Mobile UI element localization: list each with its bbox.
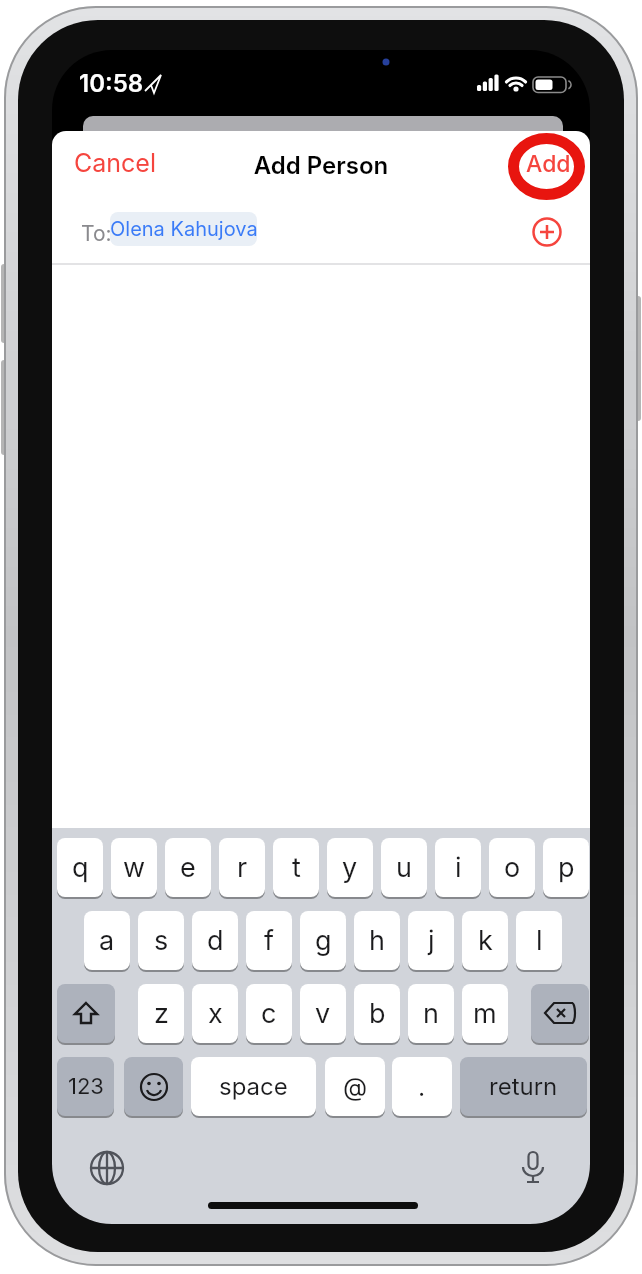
staticText: j bbox=[428, 924, 435, 957]
button[interactable]: . bbox=[392, 1057, 452, 1118]
staticText: b bbox=[369, 997, 386, 1030]
button[interactable]: d bbox=[192, 911, 238, 972]
button[interactable] bbox=[511, 1146, 555, 1190]
staticText: a bbox=[99, 924, 115, 957]
button[interactable]: f bbox=[246, 911, 292, 972]
button[interactable] bbox=[57, 984, 115, 1045]
button[interactable]: Add bbox=[517, 142, 579, 186]
staticText: o bbox=[504, 851, 521, 884]
button[interactable]: s bbox=[138, 911, 184, 972]
staticText: 10:58 bbox=[79, 69, 144, 98]
button[interactable]: n bbox=[408, 984, 454, 1045]
button[interactable]: m bbox=[462, 984, 508, 1045]
staticText: q bbox=[72, 851, 89, 884]
staticText: h bbox=[369, 924, 385, 957]
staticText: g bbox=[315, 924, 332, 957]
button[interactable]: y bbox=[327, 838, 373, 899]
staticText: i bbox=[455, 851, 462, 884]
button[interactable]: u bbox=[381, 838, 427, 899]
button[interactable] bbox=[85, 1146, 129, 1190]
button[interactable]: a bbox=[84, 911, 130, 972]
staticText: e bbox=[180, 851, 196, 884]
staticText: 123 bbox=[68, 1073, 104, 1100]
button[interactable]: Olena Kahujova bbox=[110, 212, 257, 246]
button[interactable]: h bbox=[354, 911, 400, 972]
staticText: Add bbox=[526, 150, 571, 178]
button[interactable]: b bbox=[354, 984, 400, 1045]
button[interactable] bbox=[531, 984, 589, 1045]
staticText: x bbox=[208, 997, 223, 1030]
button[interactable]: 123 bbox=[57, 1057, 114, 1118]
staticText: f bbox=[264, 924, 274, 957]
staticText: To: bbox=[81, 221, 112, 246]
button[interactable]: p bbox=[543, 838, 589, 899]
button[interactable]: g bbox=[300, 911, 346, 972]
staticText: space bbox=[219, 1072, 288, 1101]
button[interactable]: w bbox=[111, 838, 157, 899]
staticText: n bbox=[423, 997, 439, 1030]
staticText: Add Person bbox=[52, 151, 590, 180]
staticText: l bbox=[536, 924, 543, 957]
button[interactable]: z bbox=[138, 984, 184, 1045]
staticText: v bbox=[315, 997, 331, 1030]
staticText: p bbox=[558, 851, 575, 884]
button[interactable]: j bbox=[408, 911, 454, 972]
staticText: s bbox=[154, 924, 169, 957]
button[interactable]: k bbox=[462, 911, 508, 972]
button[interactable] bbox=[124, 1057, 183, 1118]
staticText: @ bbox=[343, 1072, 368, 1102]
staticText: r bbox=[237, 851, 248, 884]
staticText: m bbox=[473, 997, 497, 1030]
button[interactable]: o bbox=[489, 838, 535, 899]
button[interactable]: c bbox=[246, 984, 292, 1045]
button[interactable]: return bbox=[460, 1057, 587, 1118]
button[interactable]: v bbox=[300, 984, 346, 1045]
button[interactable]: i bbox=[435, 838, 481, 899]
staticText: Cancel bbox=[74, 148, 156, 178]
staticText: w bbox=[123, 851, 146, 884]
button[interactable]: q bbox=[57, 838, 103, 899]
staticText: k bbox=[478, 924, 493, 957]
button[interactable]: t bbox=[273, 838, 319, 899]
staticText: Olena Kahujova bbox=[110, 217, 257, 241]
staticText: . bbox=[418, 1072, 426, 1102]
staticText: z bbox=[154, 997, 169, 1030]
button[interactable] bbox=[530, 215, 564, 249]
staticText: c bbox=[261, 997, 277, 1030]
staticText: d bbox=[207, 924, 224, 957]
button[interactable]: r bbox=[219, 838, 265, 899]
staticText: t bbox=[292, 851, 301, 884]
button[interactable]: space bbox=[191, 1057, 316, 1118]
staticText: return bbox=[489, 1072, 558, 1101]
staticText: u bbox=[396, 851, 412, 884]
button[interactable]: x bbox=[192, 984, 238, 1045]
button[interactable]: e bbox=[165, 838, 211, 899]
button[interactable]: @ bbox=[325, 1057, 385, 1118]
staticText: y bbox=[342, 851, 358, 884]
button[interactable]: l bbox=[516, 911, 562, 972]
button[interactable]: Cancel bbox=[70, 142, 160, 184]
